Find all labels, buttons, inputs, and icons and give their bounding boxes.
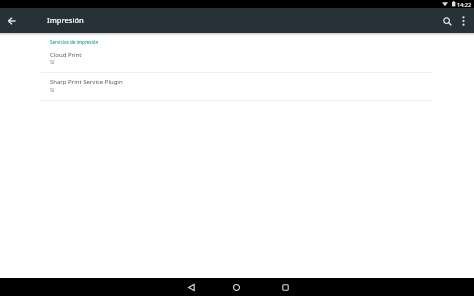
staticText: Cloud Print bbox=[50, 51, 82, 59]
button[interactable] bbox=[228, 278, 245, 296]
button[interactable] bbox=[4, 8, 20, 33]
staticText: Sharp Print Service Plugin bbox=[50, 78, 123, 86]
button[interactable]: Sharp Print Service Plugin bbox=[41, 73, 433, 99]
button[interactable] bbox=[439, 12, 455, 30]
staticText: Sí bbox=[50, 58, 55, 65]
button[interactable] bbox=[277, 278, 294, 296]
staticText: Sí bbox=[50, 86, 55, 93]
staticText: Impresión bbox=[47, 15, 84, 25]
button[interactable]: Cloud Print bbox=[41, 46, 433, 71]
button[interactable] bbox=[183, 278, 200, 296]
staticText: Servicios de impresión bbox=[50, 39, 99, 45]
staticText: 14:22 bbox=[457, 1, 472, 8]
button[interactable] bbox=[456, 12, 470, 30]
